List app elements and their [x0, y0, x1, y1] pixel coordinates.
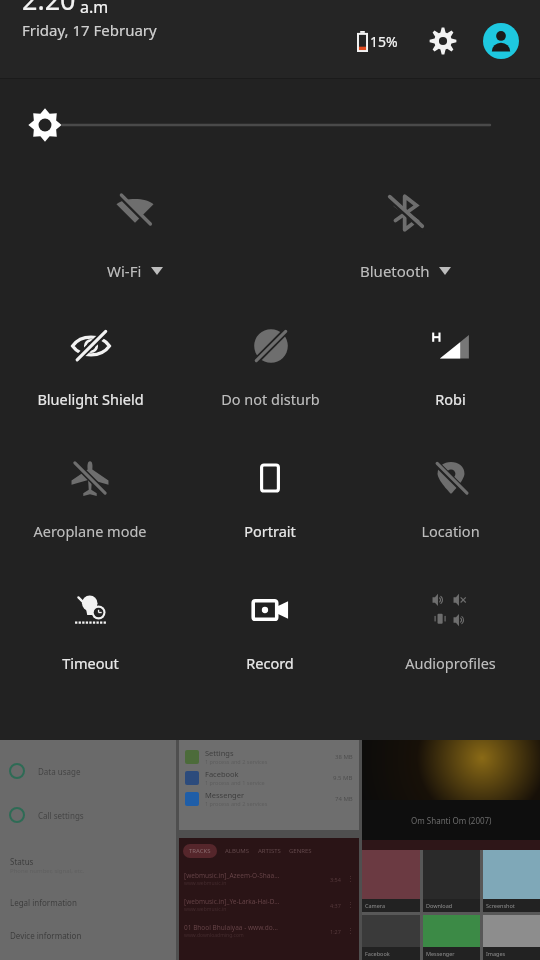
staticText: Timeout: [62, 653, 119, 673]
staticText: 74 MB: [335, 795, 353, 803]
staticText: Om Shanti Om (2007): [411, 815, 492, 826]
staticText: Download: [426, 902, 453, 909]
staticText: Device information: [10, 930, 82, 941]
button[interactable]: Do not disturb: [180, 301, 360, 433]
button[interactable]: Bluetooth: [270, 171, 540, 301]
button[interactable]: User profile: [480, 20, 522, 62]
staticText: ⋮: [347, 875, 354, 883]
staticText: 9.5 MB: [333, 774, 353, 782]
staticText: 01 Bhool Bhulaiyaa - www.do…: [184, 923, 278, 932]
staticText: ⋮: [347, 927, 354, 935]
staticText: Record: [246, 653, 294, 673]
staticText: Location: [421, 521, 480, 541]
button[interactable]: Location: [360, 433, 540, 565]
staticText: Aeroplane mode: [33, 521, 147, 541]
staticText: 15%: [370, 32, 398, 51]
staticText: Legal information: [10, 897, 77, 908]
staticText: Wi-Fi: [107, 261, 142, 281]
staticText: Robi: [435, 389, 466, 409]
button[interactable]: Portrait: [180, 433, 360, 565]
staticText: ALBUMS: [225, 847, 250, 855]
staticText: 4:37: [330, 902, 341, 909]
staticText: [webmusic.in]_Ye-Larka-Hai-D…: [184, 897, 280, 906]
staticText: www.webmusic.in: [184, 880, 227, 887]
staticText: TRACKS: [189, 847, 211, 855]
staticText: Settings: [205, 748, 234, 758]
button[interactable]: Timeout: [0, 565, 180, 697]
staticText: Images: [486, 950, 506, 957]
staticText: 1 process and 1 service: [205, 779, 265, 786]
button[interactable]: Wi-Fi: [0, 171, 270, 301]
staticText: Data usage: [38, 766, 81, 777]
staticText: Facebook: [365, 950, 390, 957]
staticText: [webmusic.in]_Azeem-O-Shaa…: [184, 871, 280, 880]
staticText: www.downloadming.com: [184, 932, 244, 939]
button[interactable]: Audioprofiles: [360, 565, 540, 697]
staticText: Do not disturb: [221, 389, 320, 409]
staticText: 1 process and 2 services: [205, 800, 268, 807]
staticText: Messenger: [205, 790, 245, 800]
button[interactable]: Brightness: [28, 108, 490, 142]
staticText: Facebook: [205, 769, 239, 779]
staticText: Camera: [365, 902, 386, 909]
staticText: Status: [10, 856, 34, 867]
staticText: Audioprofiles: [405, 653, 496, 673]
staticText: 3:54: [330, 876, 341, 883]
staticText: Friday, 17 February: [22, 20, 157, 40]
staticText: ⋮: [347, 901, 354, 909]
staticText: ARTISTS: [258, 847, 281, 855]
staticText: a.m: [80, 0, 109, 18]
staticText: GENRES: [289, 847, 312, 855]
button[interactable]: Battery 15 percent: [354, 24, 400, 58]
button[interactable]: Robi: [360, 301, 540, 433]
button[interactable]: Record: [180, 565, 360, 697]
button[interactable]: Aeroplane mode: [0, 433, 180, 565]
staticText: 38 MB: [335, 753, 353, 761]
staticText: 1 process and 2 services: [205, 758, 268, 765]
staticText: 2:20: [22, 0, 76, 18]
staticText: Bluelight Shield: [37, 389, 144, 409]
staticText: Messenger: [426, 950, 455, 957]
staticText: Portrait: [244, 521, 296, 541]
staticText: www.webmusic.in: [184, 906, 227, 913]
staticText: Call settings: [38, 810, 84, 821]
staticText: Bluetooth: [360, 261, 430, 281]
staticText: Screenshot: [486, 902, 515, 909]
button[interactable]: Bluelight Shield: [0, 301, 180, 433]
staticText: 1:27: [330, 928, 341, 935]
button[interactable]: Settings: [422, 20, 464, 62]
